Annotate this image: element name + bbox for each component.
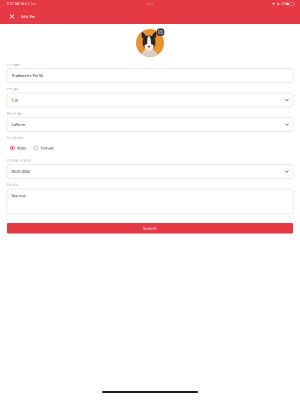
staticText: 9:27 AM [7, 2, 19, 6]
staticText: Edit Pet [20, 14, 35, 19]
staticText: Wed 5 Jun [19, 2, 36, 6]
button[interactable]: Close [7, 11, 16, 21]
staticText: 05-01-2024 [11, 169, 29, 174]
button[interactable]: LaPerm [7, 117, 293, 131]
staticText: LaPerm [11, 122, 25, 127]
button[interactable]: Change pet photo [136, 29, 164, 57]
staticText: Breed Type [7, 112, 23, 115]
staticText: Pet Bio [7, 183, 18, 187]
staticText: Normal [11, 193, 25, 198]
staticText: Pet Date of Birth [7, 159, 31, 162]
staticText: 60% [281, 2, 287, 6]
button[interactable]: 05-01-2024 [7, 164, 293, 178]
button[interactable]: Submit [7, 223, 293, 233]
staticText: Pet Name [7, 63, 20, 66]
button[interactable]: Female [34, 143, 54, 153]
staticText: Cat [11, 97, 17, 103]
staticText: Female [41, 145, 54, 151]
staticText: Pet Type [7, 87, 19, 91]
button[interactable]: Pratheesh's Pet 94 [7, 68, 293, 82]
staticText: Male [17, 145, 26, 151]
staticText: Submit [143, 226, 157, 231]
staticText: Pratheesh's Pet 94 [11, 73, 42, 78]
button[interactable]: Cat [7, 93, 293, 107]
button[interactable]: Normal [7, 189, 293, 214]
button[interactable]: Male [10, 143, 26, 153]
staticText: Pet Gender [7, 136, 24, 140]
